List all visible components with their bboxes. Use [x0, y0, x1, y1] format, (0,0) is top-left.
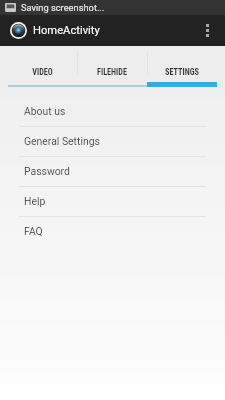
staticText: FAQ — [24, 225, 43, 237]
button[interactable]: SETTINGS — [147, 46, 217, 87]
button[interactable]: Password — [0, 156, 225, 186]
staticText: Password — [24, 165, 70, 177]
button[interactable]: About us — [0, 96, 225, 126]
button[interactable]: Help — [0, 186, 225, 216]
button[interactable]: General Settings — [0, 126, 225, 156]
button[interactable]: More options — [195, 15, 225, 46]
staticText: About us — [24, 105, 66, 117]
staticText: General Settings — [24, 135, 100, 147]
button[interactable]: FILEHIDE — [77, 46, 147, 87]
staticText: SETTINGS — [165, 67, 199, 77]
staticText: VIDEO — [32, 67, 53, 77]
staticText: FILEHIDE — [97, 67, 127, 77]
staticText: HomeActivity — [33, 24, 100, 37]
button[interactable]: FAQ — [0, 216, 225, 246]
button[interactable]: VIDEO — [8, 46, 77, 87]
staticText: Help — [24, 195, 46, 207]
staticText: Saving screenshot... — [21, 2, 105, 13]
